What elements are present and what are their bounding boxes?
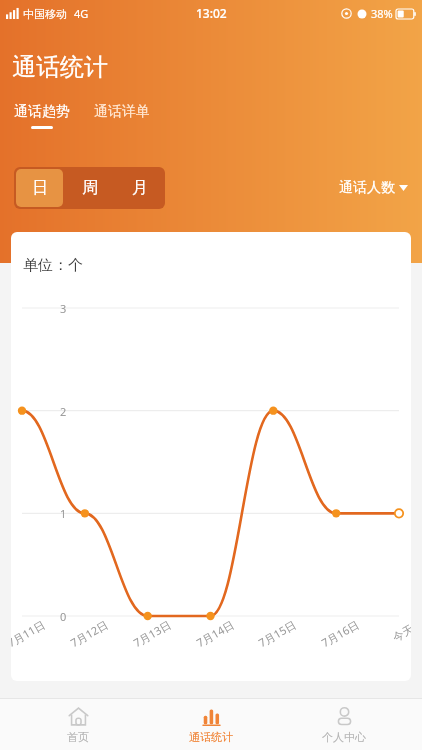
staticText: 首页 bbox=[67, 730, 89, 744]
staticText: 7月13日 bbox=[126, 614, 178, 653]
staticText: 中国移动 bbox=[23, 7, 67, 21]
staticText: 0 bbox=[60, 609, 67, 624]
staticText: 单位：个 bbox=[23, 256, 83, 275]
staticText: 38% bbox=[371, 6, 393, 21]
staticText: 4G bbox=[74, 6, 89, 21]
staticText: 今天 bbox=[377, 614, 411, 652]
staticText: 2 bbox=[60, 404, 67, 419]
staticText: 通话人数 bbox=[339, 179, 395, 197]
staticText: 通话趋势 bbox=[14, 103, 70, 121]
staticText: 3 bbox=[60, 301, 67, 316]
button[interactable]: 通话详单 bbox=[92, 103, 152, 121]
button[interactable]: 个人中心 bbox=[289, 699, 399, 750]
button[interactable]: 日 bbox=[16, 169, 63, 207]
staticText: 日 bbox=[32, 178, 48, 198]
staticText: 个人中心 bbox=[322, 730, 366, 744]
staticText: 月 bbox=[132, 178, 148, 198]
staticText: 周 bbox=[82, 178, 98, 198]
staticText: 13:02 bbox=[196, 5, 227, 21]
staticText: 7月14日 bbox=[189, 614, 241, 653]
button[interactable]: 首页 bbox=[23, 699, 133, 750]
button[interactable]: 通话统计 bbox=[156, 699, 266, 750]
button[interactable]: 通话趋势 bbox=[12, 103, 72, 129]
staticText: 7月12日 bbox=[63, 614, 115, 653]
button[interactable]: 周 bbox=[67, 169, 113, 207]
button[interactable]: 通话人数 bbox=[339, 179, 408, 197]
staticText: 7月16日 bbox=[314, 614, 366, 653]
staticText: 通话统计 bbox=[12, 52, 108, 82]
staticText: 7月11日 bbox=[11, 614, 52, 653]
staticText: 通话统计 bbox=[189, 730, 233, 744]
staticText: 通话详单 bbox=[94, 103, 150, 121]
button[interactable]: 月 bbox=[117, 169, 163, 207]
staticText: 1 bbox=[60, 506, 67, 521]
staticText: 7月15日 bbox=[251, 614, 303, 653]
